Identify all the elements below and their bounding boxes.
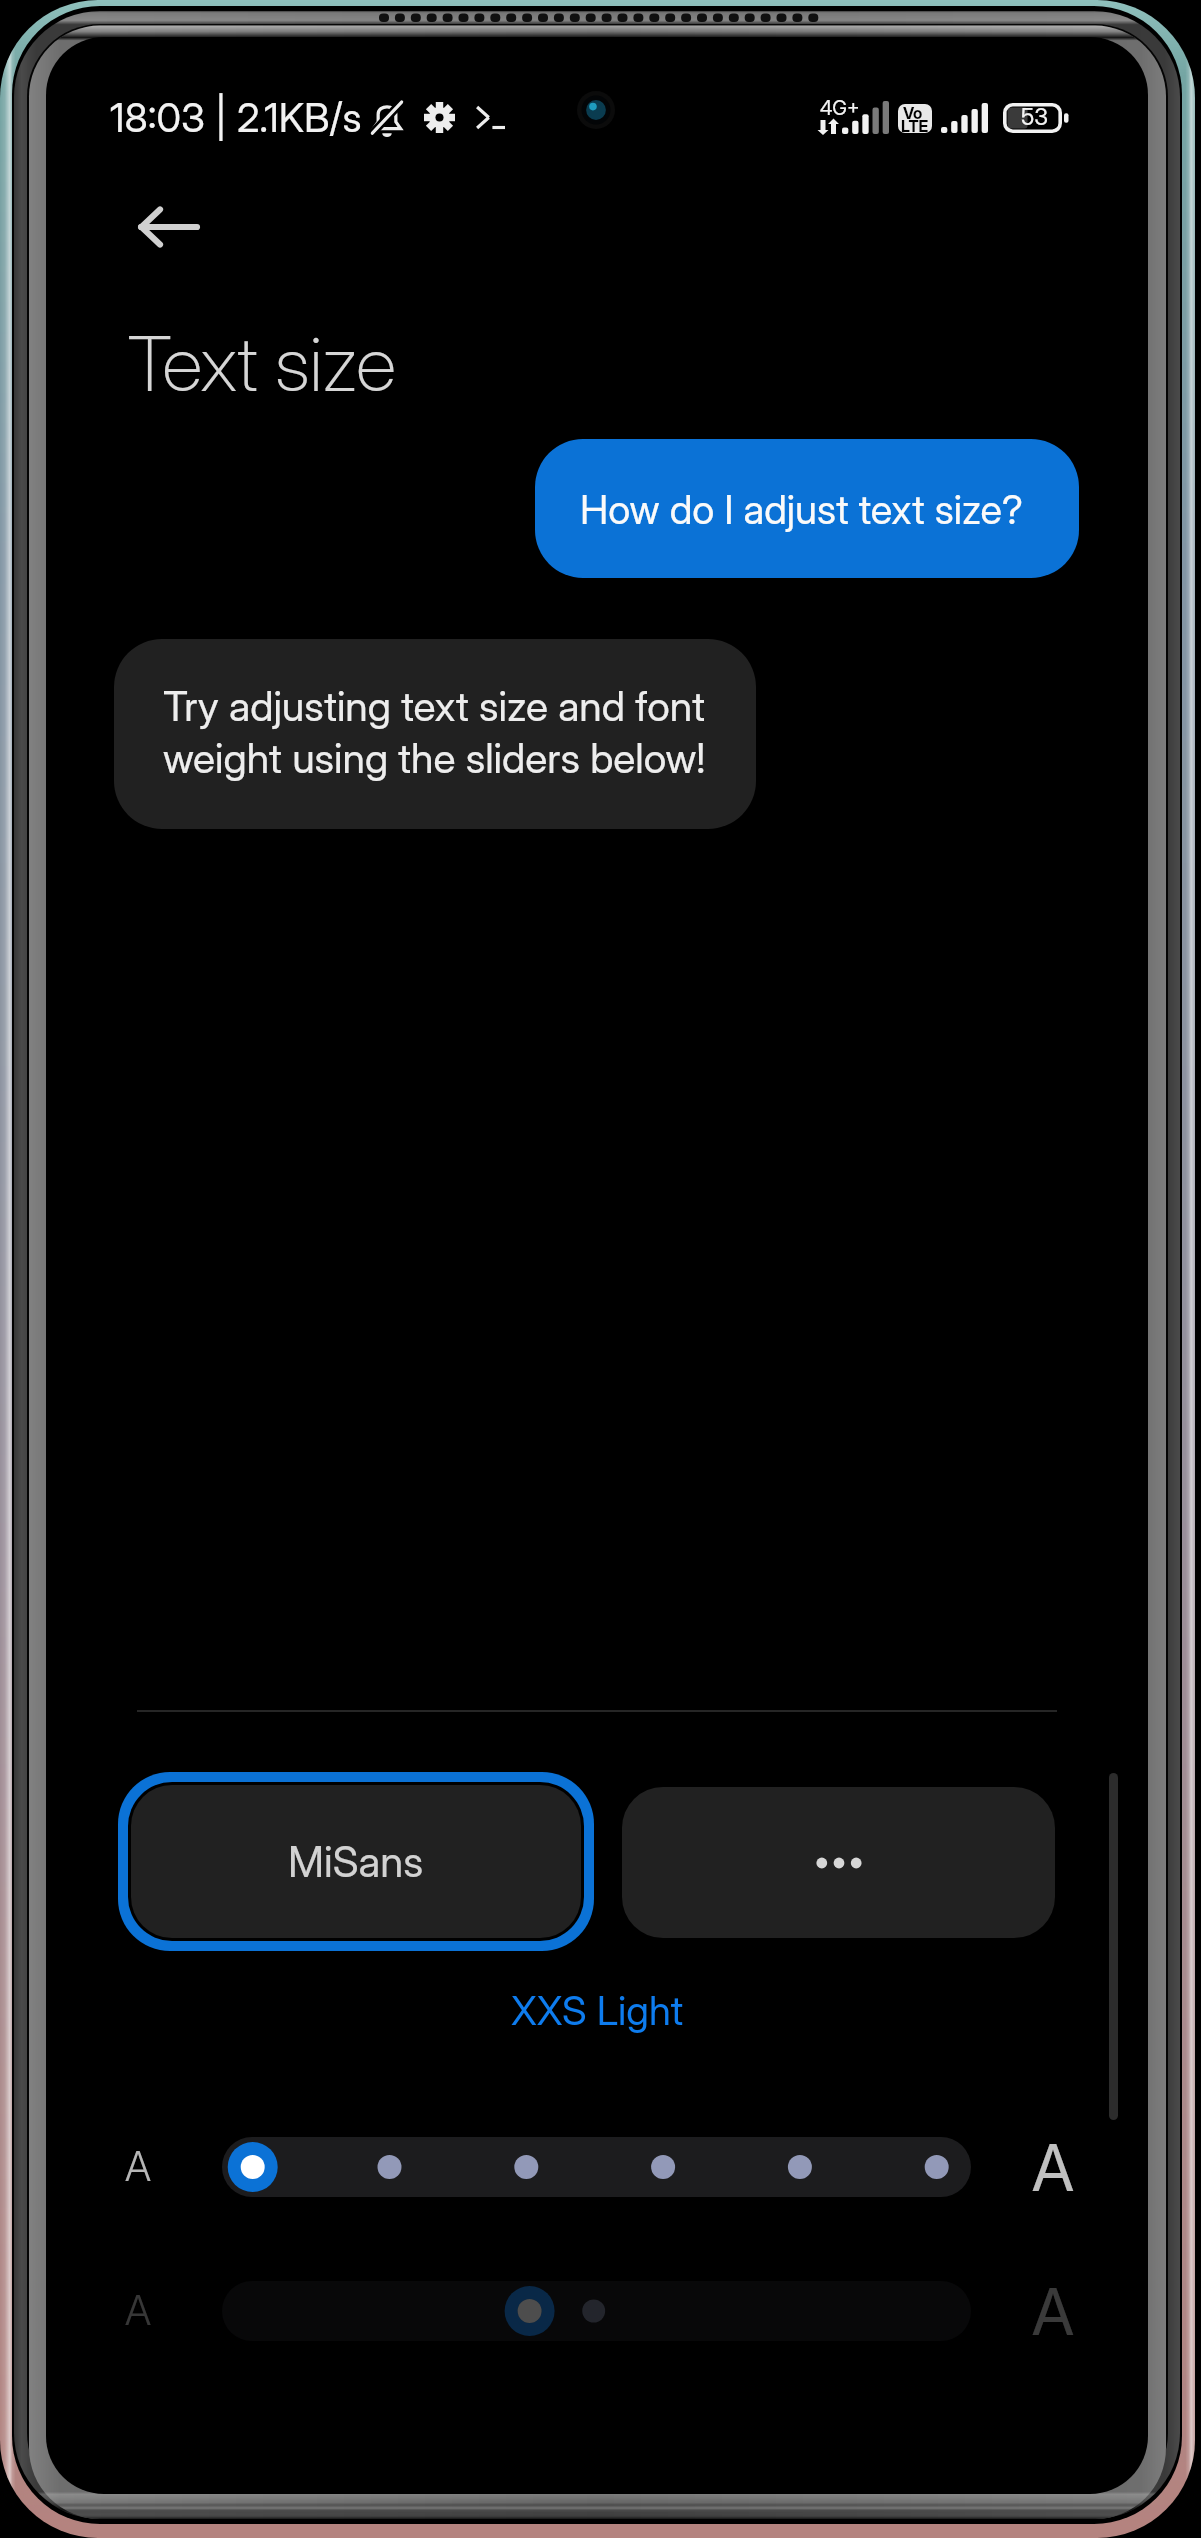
staticText: Try adjusting text size and font weight … <box>163 681 706 783</box>
staticText: XXS Light <box>511 1986 684 2034</box>
button[interactable]: How do I adjust text size? <box>535 439 1079 578</box>
staticText: A <box>125 2141 151 2191</box>
button[interactable]: Text size slider <box>222 2137 971 2197</box>
staticText: 53 <box>1021 103 1049 131</box>
staticText: 4G+ <box>820 96 860 120</box>
staticText: LTE <box>901 116 929 133</box>
staticText: MiSans <box>288 1836 424 1887</box>
staticText: How do I adjust text size? <box>580 485 1023 533</box>
staticText: A <box>1032 2129 1074 2206</box>
button[interactable]: More fonts <box>622 1787 1055 1938</box>
button[interactable]: MiSans <box>118 1772 594 1951</box>
staticText: A <box>1032 2273 1074 2350</box>
staticText: A <box>125 2285 151 2335</box>
staticText: 18:03 | 2.1KB/s <box>110 93 362 141</box>
staticText: Text size <box>127 317 396 409</box>
staticText: Vo <box>903 104 923 122</box>
button[interactable]: Back <box>120 181 212 273</box>
button[interactable]: Text size slider <box>222 2281 971 2341</box>
button[interactable]: Try adjusting text size and font weight … <box>114 639 756 829</box>
